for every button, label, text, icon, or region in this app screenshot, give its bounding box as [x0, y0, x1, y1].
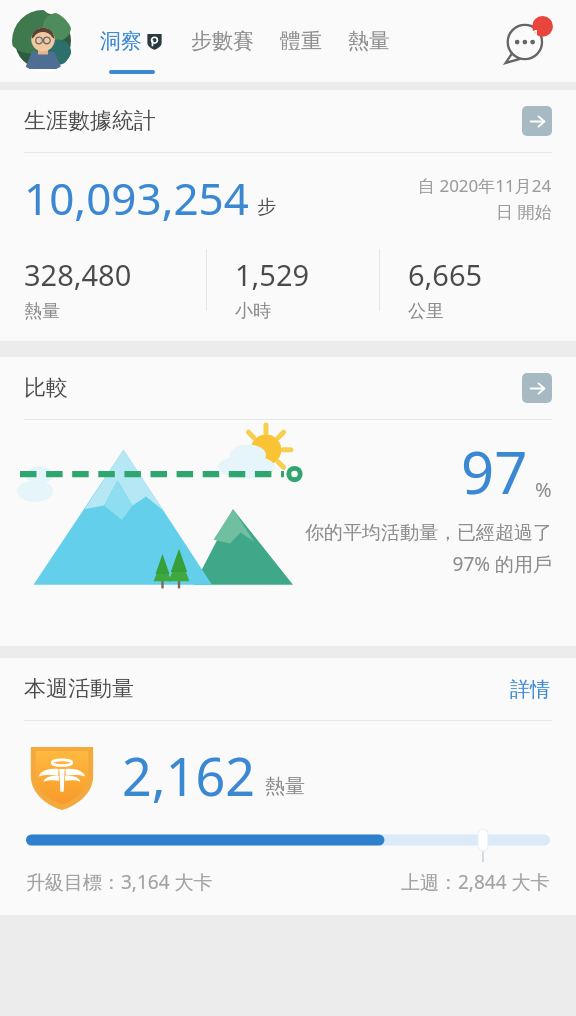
staticText: 6,665 [408, 255, 483, 294]
button[interactable]: Open 比較 [522, 373, 552, 403]
staticText: 步數賽 [191, 28, 254, 54]
staticText: 10,093,254 [24, 168, 249, 228]
staticText: 小時 [235, 300, 271, 323]
staticText: 1,529 [235, 255, 310, 294]
button[interactable]: 熱量 [348, 0, 390, 82]
staticText: 升級目標：3,164 大卡 [26, 869, 213, 895]
staticText: 1 [532, 25, 540, 43]
staticText: 2,162 [122, 740, 255, 811]
button[interactable]: Open 生涯數據統計 [522, 106, 552, 136]
staticText: 328,480 [24, 255, 132, 294]
staticText: 熱量 [265, 774, 305, 799]
staticText: 97 [461, 432, 528, 511]
staticText: 自 2020年11月24 [418, 174, 552, 197]
button[interactable]: 洞察 [100, 0, 163, 82]
staticText: 體重 [280, 28, 322, 54]
staticText: 比較 [24, 374, 68, 402]
staticText: 上週：2,844 大卡 [401, 869, 550, 895]
staticText: 本週活動量 [24, 675, 134, 703]
staticText: 步 [257, 195, 276, 219]
staticText: 詳情 [510, 677, 550, 702]
button[interactable]: Profile [12, 10, 74, 72]
staticText: 公里 [408, 300, 444, 323]
staticText: 洞察 [100, 28, 142, 54]
staticText: 97% 的用戶 [452, 551, 552, 577]
button[interactable]: 體重 [280, 0, 322, 82]
staticText: 熱量 [348, 28, 390, 54]
button[interactable]: Messages [500, 13, 556, 69]
staticText: % [535, 476, 552, 503]
staticText: 生涯數據統計 [24, 107, 156, 135]
button[interactable]: 詳情 [508, 671, 552, 708]
button[interactable]: 步數賽 [191, 0, 254, 82]
staticText: 日 開始 [496, 200, 552, 223]
staticText: 熱量 [24, 300, 60, 323]
staticText: 你的平均活動量，已經超過了 [305, 521, 552, 545]
